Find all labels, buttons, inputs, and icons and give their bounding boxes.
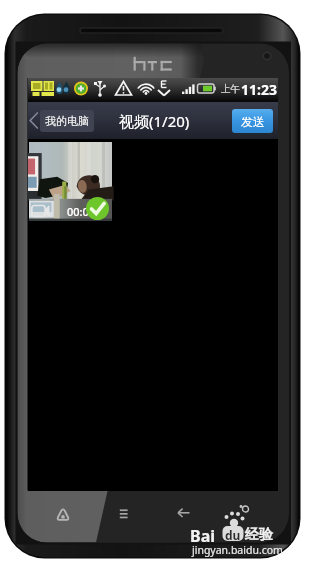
staticText: 我的电脑 (45, 114, 89, 128)
button[interactable]: Selected (86, 197, 109, 220)
button[interactable]: 00:05 (29, 142, 112, 221)
button[interactable]: 我的电脑 (28, 106, 94, 135)
staticText: Bai (190, 525, 216, 547)
staticText: 11:23 (241, 80, 277, 99)
staticText: 上午 (221, 83, 240, 95)
staticText: 经验 (245, 526, 273, 544)
staticText: 视频(1/20) (119, 111, 190, 131)
staticText: jingyan.baidu.com (192, 543, 283, 557)
staticText: 00:05 (67, 204, 96, 219)
staticText: du (225, 527, 241, 543)
button[interactable]: 发送 (232, 109, 273, 133)
staticText: 发送 (241, 114, 265, 129)
